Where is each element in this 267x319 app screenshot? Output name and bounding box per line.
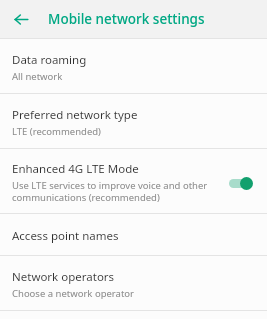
staticText: Access point names bbox=[12, 228, 119, 244]
button[interactable]: Preferred network type bbox=[0, 99, 267, 148]
button[interactable]: Data roaming bbox=[0, 44, 267, 93]
button[interactable]: Back bbox=[8, 6, 34, 32]
staticText: Choose a network operator bbox=[12, 287, 134, 300]
button[interactable]: Enhanced 4G LTE Mode toggle bbox=[227, 173, 257, 193]
button[interactable]: Network operators bbox=[0, 261, 267, 310]
button[interactable]: Enhanced 4G LTE Mode bbox=[0, 153, 267, 213]
staticText: Preferred network type bbox=[12, 107, 138, 123]
staticText: LTE (recommended) bbox=[12, 125, 101, 138]
staticText: Use LTE services to improve voice and ot… bbox=[12, 179, 221, 204]
staticText: All network bbox=[12, 70, 63, 83]
staticText: Mobile network settings bbox=[48, 10, 205, 28]
button[interactable]: Access point names bbox=[0, 220, 267, 255]
staticText: Network operators bbox=[12, 269, 115, 285]
staticText: Data roaming bbox=[12, 52, 87, 68]
staticText: Enhanced 4G LTE Mode bbox=[12, 161, 139, 177]
